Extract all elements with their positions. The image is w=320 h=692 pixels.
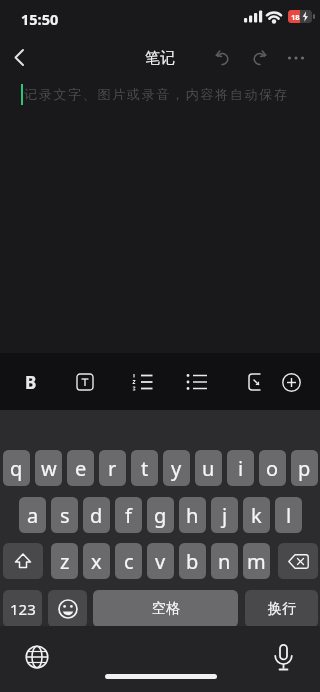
staticText: B <box>25 371 37 394</box>
button[interactable]: z <box>51 543 78 579</box>
staticText: m <box>247 548 266 575</box>
button[interactable] <box>206 42 238 74</box>
staticText: v <box>155 548 166 575</box>
button[interactable]: g <box>147 497 174 533</box>
staticText: x <box>91 548 102 575</box>
staticText: e <box>75 455 87 482</box>
staticText: 笔记 <box>145 49 175 68</box>
staticText: 15:50 <box>21 9 59 29</box>
button[interactable] <box>0 40 44 76</box>
staticText: r <box>108 455 117 482</box>
button[interactable] <box>273 365 309 399</box>
button[interactable]: j <box>211 497 238 533</box>
button[interactable]: a <box>19 497 46 533</box>
staticText: 换行 <box>268 600 296 618</box>
button[interactable] <box>3 543 43 579</box>
button[interactable]: u <box>195 450 222 486</box>
staticText: 123 <box>10 599 36 619</box>
button[interactable]: s <box>51 497 78 533</box>
button[interactable]: m <box>243 543 270 579</box>
button[interactable]: q <box>3 450 30 486</box>
staticText: i <box>238 455 244 482</box>
staticText: 记录文字、图片或录音，内容将自动保存 <box>24 86 289 102</box>
button[interactable]: b <box>179 543 206 579</box>
staticText: 18 <box>291 12 300 22</box>
staticText: 空格 <box>152 600 180 618</box>
button[interactable]: e <box>67 450 94 486</box>
button[interactable]: o <box>259 450 286 486</box>
button[interactable]: B <box>13 365 49 399</box>
button[interactable] <box>237 365 273 399</box>
staticText: k <box>251 502 262 529</box>
button[interactable] <box>125 365 161 399</box>
staticText: c <box>124 548 134 575</box>
button[interactable]: t <box>131 450 158 486</box>
staticText: l <box>286 502 292 529</box>
staticText: o <box>266 455 279 482</box>
button[interactable]: c <box>115 543 142 579</box>
staticText: f <box>125 502 132 529</box>
button[interactable]: p <box>291 450 318 486</box>
button[interactable]: 空格 <box>93 590 238 627</box>
button[interactable]: y <box>163 450 190 486</box>
button[interactable]: v <box>147 543 174 579</box>
staticText: n <box>218 548 231 575</box>
button[interactable]: f <box>115 497 142 533</box>
button[interactable]: k <box>243 497 270 533</box>
staticText: d <box>90 502 103 529</box>
staticText: h <box>186 502 199 529</box>
staticText: t <box>141 455 149 482</box>
staticText: y <box>171 455 182 482</box>
button[interactable]: l <box>275 497 302 533</box>
button[interactable]: n <box>211 543 238 579</box>
button[interactable]: 换行 <box>245 590 318 627</box>
staticText: w <box>41 455 57 482</box>
staticText: g <box>154 502 167 529</box>
button[interactable]: r <box>99 450 126 486</box>
staticText: s <box>60 502 70 529</box>
button[interactable] <box>48 590 87 627</box>
staticText: p <box>298 455 311 482</box>
button[interactable] <box>278 543 318 579</box>
button[interactable]: w <box>35 450 62 486</box>
button[interactable] <box>179 365 215 399</box>
button[interactable] <box>267 640 300 674</box>
staticText: q <box>10 455 23 482</box>
staticText: z <box>60 548 70 575</box>
staticText: b <box>186 548 199 575</box>
button[interactable] <box>279 42 313 74</box>
button[interactable]: d <box>83 497 110 533</box>
staticText: j <box>222 502 228 529</box>
button[interactable]: x <box>83 543 110 579</box>
button[interactable]: h <box>179 497 206 533</box>
button[interactable]: i <box>227 450 254 486</box>
staticText: u <box>202 455 215 482</box>
button[interactable] <box>244 42 276 74</box>
button[interactable] <box>20 640 53 673</box>
button[interactable]: 123 <box>3 590 42 627</box>
button[interactable] <box>67 365 103 399</box>
staticText: a <box>27 502 39 529</box>
